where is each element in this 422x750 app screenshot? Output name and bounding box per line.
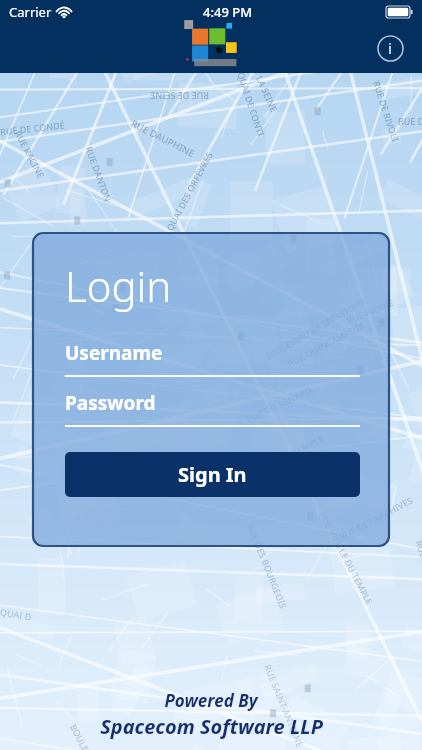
staticText: BOULEVARD DE SÉBASTOPOL: [263, 293, 372, 363]
staticText: Password: [65, 390, 156, 416]
staticText: RUE DES BOURGEOIS: [245, 522, 290, 610]
staticText: QUAI DE CONTI: [235, 70, 267, 138]
staticText: RUE DE BRETAGNE: [414, 539, 422, 617]
staticText: Powered By: [164, 689, 258, 712]
staticText: Carrier: [9, 3, 52, 21]
staticText: Login: [65, 257, 172, 314]
button[interactable]: Sign In: [65, 452, 360, 497]
staticText: Sign In: [178, 461, 247, 488]
staticText: RUE DU RENARD: [244, 383, 314, 425]
staticText: QUAI D: [0, 605, 33, 623]
staticText: RUE DAUPHINE: [129, 117, 197, 160]
staticText: RUE DU TEMPLE: [260, 432, 325, 476]
staticText: RUE DES ARCHIVES: [337, 493, 415, 543]
staticText: Username: [65, 340, 163, 366]
staticText: RUE DE CONDÉ: [0, 119, 65, 137]
staticText: RUE QUINCAMPOIX: [285, 319, 366, 369]
staticText: LA SEINE: [254, 74, 281, 114]
staticText: 4:49 PM: [203, 3, 253, 21]
staticText: RUE PIERRE: [345, 296, 395, 326]
staticText: BOULEVARD HENRI IV: [68, 722, 122, 750]
button[interactable]: Password: [65, 390, 360, 427]
staticText: RUE RACINE: [12, 128, 47, 180]
staticText: RUE VIEILLE DU TEMPLE: [317, 510, 376, 606]
button[interactable]: Username: [65, 340, 360, 377]
staticText: i: [388, 38, 393, 58]
staticText: RUE DE RIVOLI: [371, 79, 402, 143]
staticText: QUAI DES ORFÈVRES: [163, 149, 215, 233]
staticText: Spacecom Software LLP: [100, 713, 323, 740]
button[interactable]: Info: [373, 31, 407, 65]
staticText: RUE SAINT-ANTOINE: [262, 662, 307, 749]
staticText: RUE DE SEINE: [150, 90, 209, 102]
staticText: RUE DE: [398, 115, 422, 127]
staticText: RUE DANTON: [83, 145, 114, 203]
